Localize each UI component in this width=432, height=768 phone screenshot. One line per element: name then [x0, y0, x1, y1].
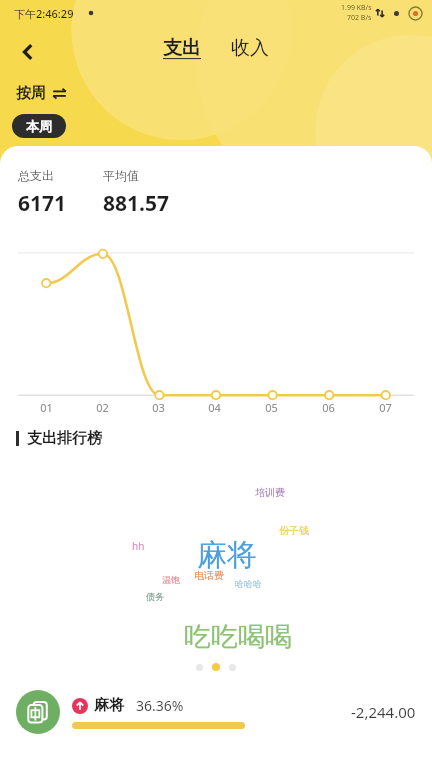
staticText: 总支出 [18, 168, 54, 183]
staticText: 支出排行榜 [27, 429, 102, 448]
staticText: 按周 [16, 84, 46, 103]
button[interactable]: Back [8, 32, 48, 72]
staticText: 吃吃喝喝 [184, 620, 292, 654]
staticText: 881.57 [103, 189, 169, 218]
button[interactable]: 本周 [12, 114, 66, 138]
staticText: 债务 [146, 591, 164, 602]
button[interactable]: 收入 [225, 36, 275, 60]
staticText: 培训费 [255, 486, 285, 499]
staticText: 收入 [231, 36, 269, 60]
staticText: 本周 [26, 118, 52, 134]
staticText: -2,244.00 [351, 702, 416, 722]
staticText: 04 [208, 400, 221, 415]
staticText: 份子钱 [279, 524, 309, 537]
staticText: 平均值 [103, 168, 139, 183]
staticText: 6171 [18, 189, 67, 218]
button[interactable]: 麻将 [0, 681, 432, 743]
staticText: 01 [40, 400, 53, 415]
staticText: 1.99 KB/s [341, 3, 372, 13]
staticText: 06 [322, 400, 335, 415]
staticText: 支出 [163, 36, 201, 60]
staticText: 02 [96, 400, 109, 415]
staticText: 温饱 [162, 574, 180, 585]
staticText: 哈哈哈 [235, 578, 262, 589]
staticText: 07 [379, 400, 392, 415]
staticText: 麻将 [94, 696, 124, 715]
button[interactable]: 按周 [16, 84, 67, 103]
staticText: 702 B/s [347, 13, 372, 23]
staticText: 05 [265, 400, 278, 415]
button[interactable]: 支出 [157, 36, 207, 60]
staticText: 36.36% [136, 696, 184, 715]
staticText: 下午2:46:29 [14, 6, 74, 21]
staticText: 03 [152, 400, 165, 415]
staticText: hh [132, 539, 145, 553]
staticText: 麻将 [197, 536, 257, 574]
staticText: 电话费 [194, 569, 224, 582]
